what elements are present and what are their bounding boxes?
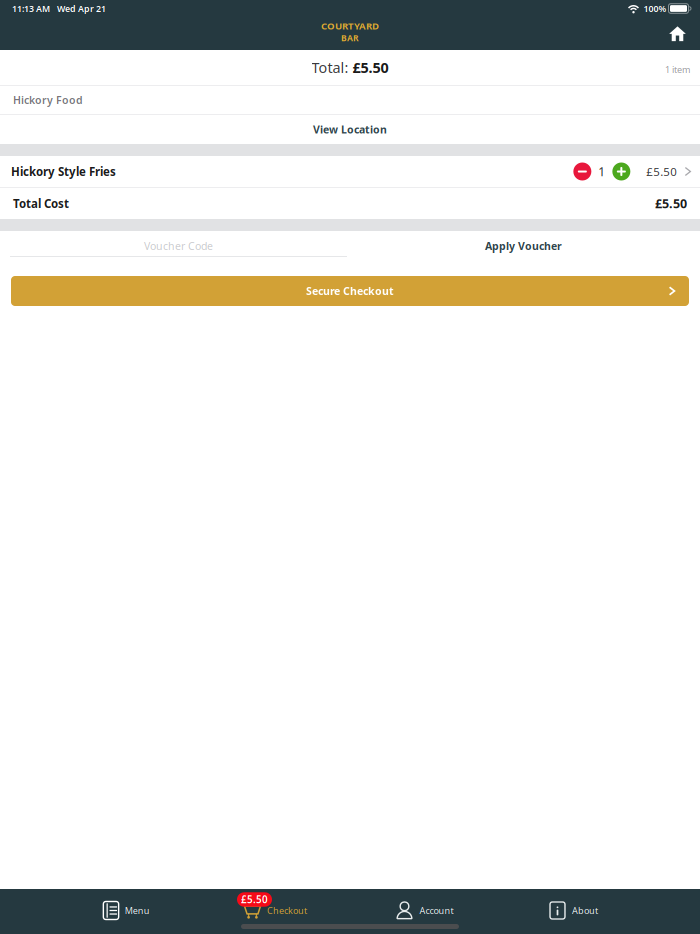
staticText: 11:13 AM <box>12 2 50 14</box>
staticText: View Location <box>313 122 387 137</box>
staticText: Apply Voucher <box>485 239 562 253</box>
button[interactable]: Checkout <box>201 897 350 924</box>
staticText: Total Cost <box>13 196 69 211</box>
button[interactable]: View Location <box>0 115 700 144</box>
button[interactable]: Home <box>661 19 694 48</box>
staticText: £5.50 <box>646 164 677 179</box>
button[interactable]: Decrease quantity <box>571 160 593 182</box>
button[interactable]: Apply Voucher <box>471 236 576 262</box>
staticText: Hickory Food <box>13 93 83 107</box>
staticText: 1 <box>598 163 605 180</box>
staticText: Hickory Style Fries <box>11 164 116 179</box>
button[interactable]: Menu <box>52 897 201 924</box>
staticText: £5.50 <box>655 195 687 212</box>
staticText: 1 item <box>665 63 690 76</box>
button[interactable]: Increase quantity <box>610 160 632 182</box>
staticText: Voucher Code <box>144 239 213 253</box>
staticText: 100% <box>643 2 666 14</box>
staticText: Account <box>419 904 453 917</box>
button[interactable]: Hickory Style Fries <box>0 156 700 187</box>
staticText: COURTYARD <box>321 19 379 32</box>
button[interactable]: Secure Checkout <box>0 262 700 312</box>
staticText: BAR <box>341 32 359 44</box>
button[interactable]: Voucher Code <box>0 236 347 262</box>
staticText: £5.50 <box>241 893 268 906</box>
staticText: Total: <box>311 58 352 77</box>
staticText: Menu <box>125 904 150 917</box>
staticText: Secure Checkout <box>306 284 394 298</box>
staticText: Wed Apr 21 <box>57 2 106 14</box>
button[interactable]: Account <box>350 897 499 924</box>
staticText: Checkout <box>267 904 307 917</box>
staticText: About <box>572 904 598 917</box>
button[interactable]: About <box>499 897 648 924</box>
staticText: £5.50 <box>352 58 388 77</box>
